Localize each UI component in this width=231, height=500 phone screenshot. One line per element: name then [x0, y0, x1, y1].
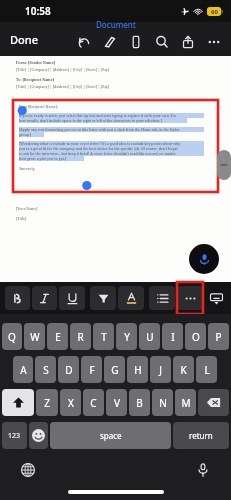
button[interactable]: Dictate: [189, 244, 219, 274]
button[interactable]: Shift: [2, 389, 34, 416]
button[interactable]: Z: [36, 389, 58, 416]
button[interactable]: O: [185, 323, 206, 350]
button[interactable]: F: [81, 356, 102, 383]
button[interactable]: S: [35, 356, 56, 383]
staticText: V: [114, 396, 120, 410]
staticText: 60: [211, 8, 218, 16]
staticText: Sincerely,: [19, 166, 50, 171]
button[interactable]: Hide keyboard: [206, 282, 226, 314]
button[interactable]: List: [149, 286, 175, 310]
staticText: space: [100, 430, 122, 441]
button[interactable]: P: [208, 323, 229, 350]
staticText: [Wondering what to include in your cover…: [19, 141, 204, 146]
button[interactable]: Share: [175, 29, 201, 55]
staticText: D: [65, 363, 73, 377]
staticText: To: [Recipient Name]: [16, 77, 125, 82]
button[interactable]: More formatting: [177, 286, 203, 310]
staticText: group.]: [19, 132, 44, 137]
staticText: K: [180, 363, 187, 377]
staticText: 10:58: [25, 4, 51, 18]
staticText: L: [204, 363, 210, 377]
staticText: M: [181, 396, 191, 410]
staticText: Document: [96, 19, 136, 30]
staticText: [Title] | [Company] | [Address] | [City]…: [16, 84, 175, 89]
staticText: F: [89, 363, 95, 377]
button[interactable]: B: [129, 389, 150, 416]
button[interactable]: Scroll handle: [217, 150, 231, 180]
button[interactable]: Emoji: [29, 422, 48, 449]
button[interactable]: Dictation: [191, 458, 215, 482]
staticText: I: [171, 330, 175, 344]
staticText: If you're ready to write, just select th…: [19, 113, 204, 118]
button[interactable]: J: [150, 356, 171, 383]
staticText: C: [90, 396, 97, 410]
button[interactable]: H: [127, 356, 148, 383]
button[interactable]: I: [162, 323, 183, 350]
button[interactable]: M: [175, 389, 196, 416]
button[interactable]: T: [93, 323, 114, 350]
button[interactable]: Delete: [198, 389, 229, 416]
button[interactable]: Underline: [59, 286, 85, 310]
staticText: Z: [44, 396, 50, 410]
staticText: to ask for the interview—but keep it bri…: [19, 151, 204, 156]
button[interactable]: V: [106, 389, 127, 416]
button[interactable]: space: [50, 422, 171, 449]
staticText: Y: [124, 330, 130, 344]
button[interactable]: 123: [2, 422, 27, 449]
button[interactable]: U: [139, 323, 160, 350]
button[interactable]: X: [60, 389, 81, 416]
staticText: B: [136, 396, 143, 410]
button[interactable]: Phone layout: [123, 29, 149, 55]
staticText: return: [189, 430, 213, 441]
button[interactable]: Y: [116, 323, 137, 350]
staticText: you're a great fit for the company and t…: [19, 146, 204, 151]
button[interactable]: A: [13, 356, 33, 383]
button[interactable]: Text color: [118, 286, 144, 310]
staticText: J: [159, 363, 162, 377]
button[interactable]: Bold: [5, 286, 30, 310]
staticText: G: [111, 363, 119, 377]
button[interactable]: K: [173, 356, 194, 383]
button[interactable]: N: [152, 389, 173, 416]
staticText: H: [134, 363, 142, 377]
staticText: Dear [Recipient Name]:: [19, 104, 115, 109]
staticText: [Title] | [Company] | [Address] | [City]…: [16, 67, 175, 72]
button[interactable]: Italic: [32, 286, 57, 310]
button[interactable]: Undo: [71, 29, 97, 55]
button[interactable]: Change keyboard language: [16, 458, 40, 482]
button[interactable]: G: [104, 356, 125, 383]
button[interactable]: Q: [2, 323, 22, 350]
staticText: O: [192, 330, 200, 344]
button[interactable]: return: [173, 422, 229, 449]
staticText: U: [146, 330, 154, 344]
staticText: A: [20, 363, 27, 377]
staticText: T: [101, 330, 107, 344]
button[interactable]: C: [83, 389, 104, 416]
staticText: best results, don't include space to the…: [19, 118, 187, 123]
button[interactable]: Markup: [97, 29, 123, 55]
staticText: W: [30, 330, 40, 344]
staticText: S: [43, 363, 49, 377]
staticText: how great a plot you've got.]: [19, 156, 84, 161]
button[interactable]: Done: [6, 29, 42, 50]
staticText: N: [159, 396, 167, 410]
button[interactable]: L: [196, 356, 217, 383]
staticText: E: [55, 330, 61, 344]
staticText: [Title]: [16, 216, 46, 221]
staticText: 123: [8, 431, 21, 441]
button[interactable]: E: [47, 323, 68, 350]
staticText: From: [Sender Name]: [16, 60, 119, 65]
staticText: P: [215, 330, 222, 344]
staticText: [Apply any text formatting you see in th…: [19, 127, 204, 132]
staticText: X: [68, 396, 74, 410]
button[interactable]: D: [58, 356, 79, 383]
button[interactable]: Highlight: [90, 286, 116, 310]
button[interactable]: W: [24, 323, 45, 350]
staticText: Q: [8, 330, 16, 344]
staticText: [Your Name]: [16, 206, 72, 211]
button[interactable]: Search: [149, 29, 175, 55]
button[interactable]: R: [70, 323, 91, 350]
button[interactable]: More: [201, 29, 227, 55]
staticText: Done: [10, 32, 38, 47]
staticText: R: [77, 330, 84, 344]
